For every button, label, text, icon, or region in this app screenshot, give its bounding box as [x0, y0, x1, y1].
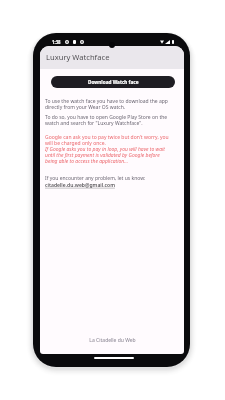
staticText: To do so, you have to open Google Play S…: [45, 114, 171, 127]
button[interactable]: citadelle.du.web@gmail.com: [45, 182, 115, 189]
staticText: To use the watch face you have to downlo…: [45, 98, 171, 111]
staticText: Luxury Watchface: [46, 52, 110, 62]
button[interactable]: Download Watch face: [51, 76, 175, 88]
staticText: Google can ask you to pay twice but don'…: [45, 134, 171, 165]
staticText: La Citadelle du Web: [89, 337, 136, 344]
staticText: Download Watch face: [88, 79, 139, 85]
staticText: 1:38: [52, 39, 61, 45]
staticText: If you encounter any problem, let us kno…: [45, 175, 146, 182]
button[interactable]: Luxury Watchface: [40, 46, 184, 69]
